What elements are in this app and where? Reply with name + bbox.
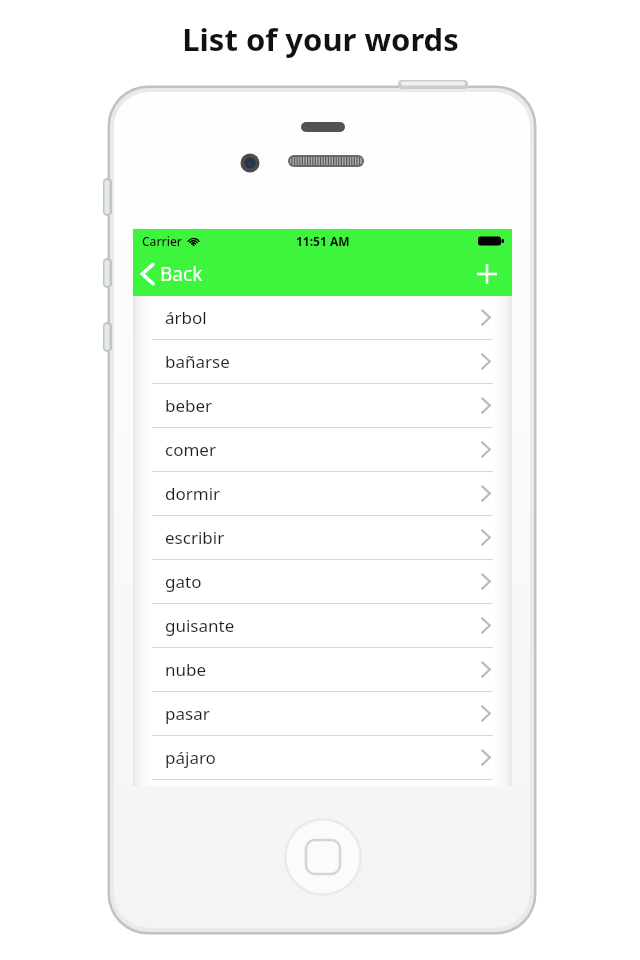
staticText: pasar [165,702,210,725]
staticText: pájaro [165,746,216,769]
button[interactable]: comer [152,428,493,472]
button[interactable]: dormir [152,472,493,516]
button[interactable]: bañarse [152,340,493,384]
staticText: bañarse [165,350,230,373]
staticText: árbol [165,306,207,329]
staticText: gato [165,570,202,593]
staticText: escribir [165,526,225,549]
button[interactable]: beber [152,384,493,428]
staticText: List of your words [182,18,459,60]
button[interactable]: gato [152,560,493,604]
button[interactable]: escribir [152,516,493,560]
staticText: dormir [165,482,221,505]
button[interactable]: árbol [152,296,493,340]
staticText: 11:51 AM [296,233,350,249]
staticText: beber [165,394,213,417]
button[interactable]: pasar [152,692,493,736]
button[interactable]: nube [152,648,493,692]
staticText: Back [160,261,203,287]
button[interactable]: guisante [152,604,493,648]
staticText: comer [165,438,216,461]
button[interactable]: Add word [462,252,512,296]
staticText: nube [165,658,207,681]
button[interactable]: Back [133,252,213,296]
staticText: Carrier [142,233,182,249]
staticText: guisante [165,614,235,637]
button[interactable]: pájaro [152,736,493,780]
